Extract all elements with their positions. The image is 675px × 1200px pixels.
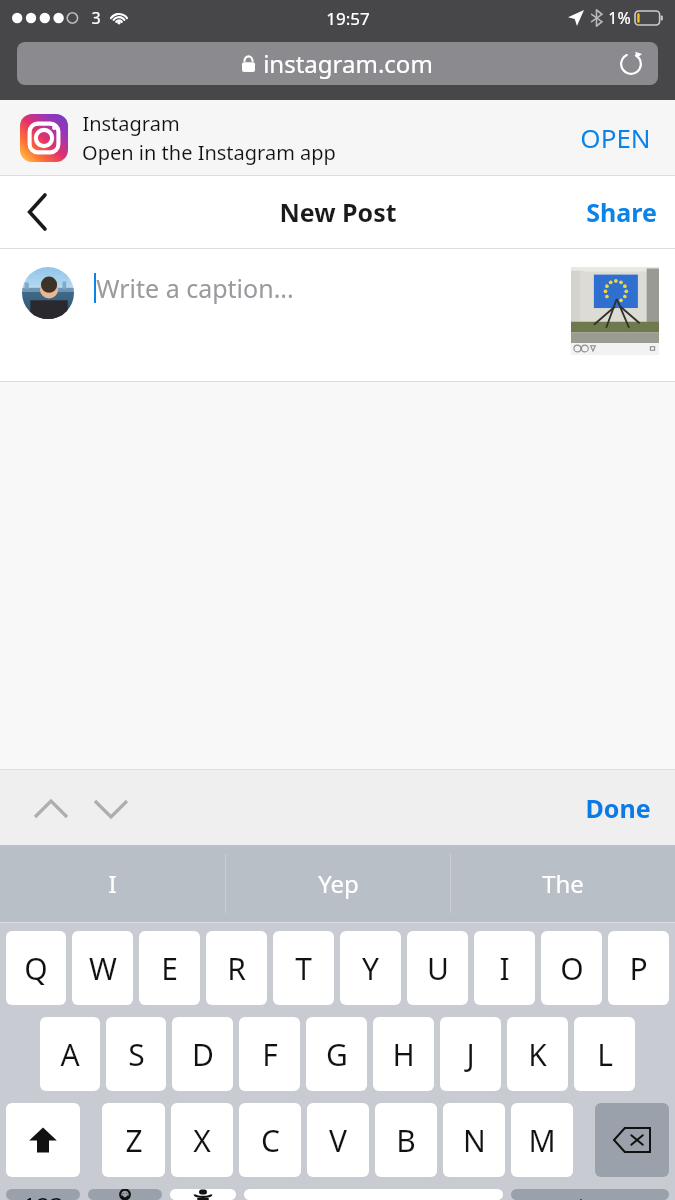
button[interactable]: C [239, 1103, 301, 1177]
button[interactable]: B [375, 1103, 437, 1177]
staticText: Open in the Instagram app [82, 139, 336, 166]
button[interactable]: space [244, 1189, 503, 1200]
staticText: O [560, 948, 584, 989]
staticText: R [227, 948, 246, 989]
staticText: The [542, 867, 584, 900]
button[interactable]: Selected photo [571, 267, 659, 355]
staticText: E [161, 948, 178, 989]
button[interactable]: instagram.com [17, 42, 658, 85]
staticText: J [466, 1034, 475, 1075]
staticText: G [326, 1034, 348, 1075]
button[interactable]: Share [582, 187, 661, 237]
staticText: T [295, 948, 312, 989]
staticText: Q [24, 948, 48, 989]
button[interactable]: Done [579, 783, 657, 833]
staticText: Z [125, 1120, 143, 1161]
button[interactable]: Z [102, 1103, 165, 1177]
button[interactable]: W [72, 931, 133, 1005]
button[interactable]: 123 [6, 1189, 80, 1200]
button[interactable]: OPEN [576, 114, 655, 161]
button[interactable]: I [0, 845, 225, 922]
staticText: A [60, 1034, 80, 1075]
staticText: instagram.com [263, 47, 433, 80]
staticText: New Post [279, 195, 397, 229]
staticText: OPEN [580, 120, 651, 155]
staticText: M [528, 1120, 556, 1161]
staticText: Share [586, 195, 657, 229]
button[interactable]: Q [6, 931, 66, 1005]
button[interactable]: Backspace [595, 1103, 669, 1177]
button[interactable]: G [306, 1017, 367, 1091]
button[interactable]: return [511, 1189, 669, 1200]
button[interactable]: I [474, 931, 535, 1005]
button[interactable]: Y [340, 931, 401, 1005]
button[interactable]: P [608, 931, 669, 1005]
button[interactable]: Next field [86, 783, 136, 833]
button[interactable]: Yep [226, 845, 450, 922]
button[interactable]: L [574, 1017, 635, 1091]
staticText: return [553, 1189, 628, 1200]
staticText: H [392, 1034, 415, 1075]
staticText: S [128, 1034, 145, 1075]
button[interactable]: Reload [618, 51, 644, 77]
staticText: 19:57 [326, 7, 370, 30]
button[interactable]: Write a caption... [94, 271, 561, 305]
staticText: B [396, 1120, 416, 1161]
button[interactable]: S [106, 1017, 166, 1091]
button[interactable]: R [206, 931, 267, 1005]
button[interactable]: The [451, 845, 675, 922]
button[interactable]: T [273, 931, 334, 1005]
staticText: V [329, 1120, 347, 1161]
staticText: P [629, 948, 648, 989]
button[interactable]: Dictation [170, 1189, 236, 1200]
button[interactable]: M [511, 1103, 573, 1177]
staticText: Instagram [82, 110, 180, 137]
staticText: U [427, 948, 449, 989]
staticText: W [89, 948, 117, 989]
staticText: N [463, 1120, 486, 1161]
button[interactable]: V [307, 1103, 369, 1177]
button[interactable]: U [407, 931, 468, 1005]
staticText: F [262, 1034, 278, 1075]
button[interactable]: J [440, 1017, 501, 1091]
button[interactable]: Instagram [0, 100, 675, 175]
button[interactable]: E [139, 931, 200, 1005]
staticText: 3 [91, 7, 101, 29]
button[interactable]: Emoji [88, 1189, 162, 1200]
button[interactable]: Shift [6, 1103, 80, 1177]
staticText: I [499, 948, 510, 989]
button[interactable]: K [507, 1017, 568, 1091]
button[interactable]: Back [14, 188, 62, 236]
staticText: K [528, 1034, 547, 1075]
button[interactable]: Previous field [26, 783, 76, 833]
staticText: L [597, 1034, 613, 1075]
staticText: C [261, 1120, 280, 1161]
staticText: Y [362, 948, 379, 989]
staticText: Done [585, 791, 651, 825]
staticText: 123 [22, 1189, 64, 1200]
button[interactable]: O [541, 931, 602, 1005]
staticText: I [108, 867, 117, 900]
button[interactable]: X [171, 1103, 233, 1177]
staticText: D [192, 1034, 214, 1075]
button[interactable]: H [373, 1017, 434, 1091]
staticText: Yep [318, 867, 359, 900]
staticText: Write a caption... [96, 271, 294, 305]
button[interactable]: D [172, 1017, 233, 1091]
staticText: 1% [608, 7, 631, 29]
button[interactable]: F [239, 1017, 300, 1091]
button[interactable]: N [443, 1103, 505, 1177]
staticText: X [193, 1120, 211, 1161]
button[interactable]: A [40, 1017, 100, 1091]
